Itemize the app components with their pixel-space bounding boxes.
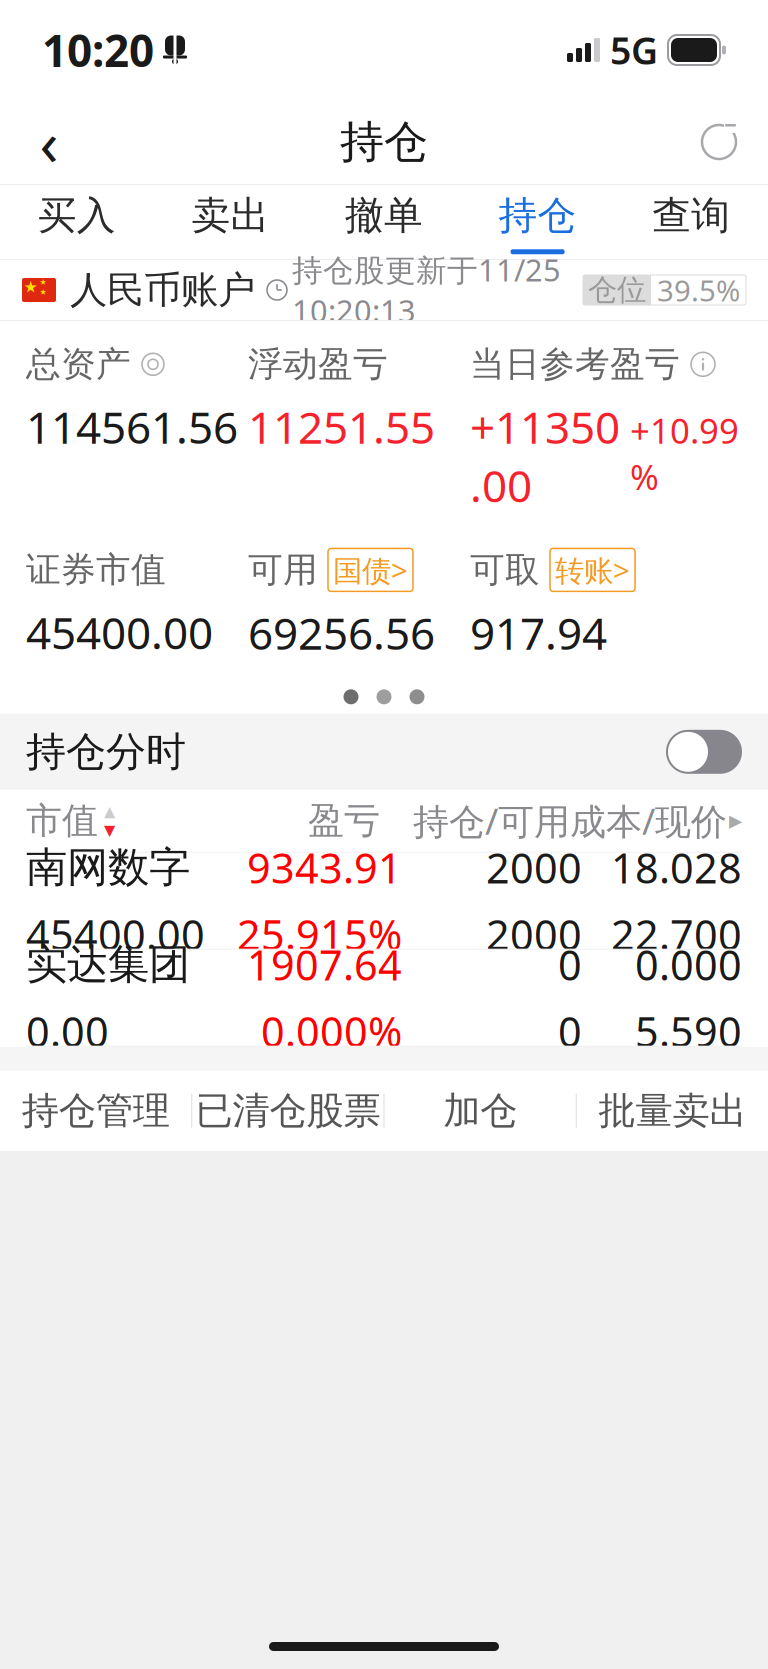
staticText: 证券市值 [26, 548, 166, 591]
button[interactable]: 返回 [14, 107, 84, 177]
staticText: ★ [23, 278, 37, 296]
button[interactable]: 持仓管理 [0, 1071, 191, 1151]
staticText: ‹ [39, 101, 58, 183]
button[interactable]: 市值 [26, 799, 115, 843]
button[interactable]: 刷新 [684, 107, 754, 177]
staticText: 查询 [652, 192, 730, 239]
button[interactable]: 实达集团 [0, 950, 768, 1046]
staticText: 5G [610, 25, 658, 75]
staticText: 0.000% [261, 1004, 402, 1059]
staticText: 已清仓股票 [195, 1088, 380, 1134]
button[interactable]: 持仓 [461, 185, 614, 259]
staticText: 0.00 [26, 1004, 109, 1059]
staticText: 39.5% [657, 270, 740, 309]
staticText: 国债> [333, 550, 408, 589]
staticText: 18.028 [611, 840, 742, 895]
staticText: 45400.00 [26, 603, 213, 661]
staticText: 实达集团 [26, 939, 190, 990]
staticText: 持仓 [499, 192, 577, 239]
staticText: 917.94 [470, 603, 607, 662]
staticText: 成本/现价 [570, 797, 727, 845]
staticText: 2000 [486, 907, 582, 962]
staticText: 0 [558, 1004, 582, 1059]
staticText: 10:20 [42, 21, 154, 79]
staticText: ★ [39, 287, 46, 297]
staticText: 转账> [555, 550, 630, 589]
staticText: 0.000 [635, 937, 742, 992]
staticText: ★ [39, 277, 46, 286]
staticText: 45400.00 [26, 907, 205, 962]
staticText: 持仓分时 [26, 727, 186, 776]
staticText: 0 [558, 937, 582, 992]
staticText: 人民币账户 [70, 267, 255, 313]
staticText: ▶ [729, 811, 742, 831]
staticText: 当日参考盈亏 [470, 343, 680, 386]
button[interactable]: 查询 [614, 185, 768, 259]
staticText: ▲ [104, 803, 115, 820]
staticText: +11350.00 [470, 398, 620, 514]
button[interactable]: 转账> [550, 548, 635, 591]
button[interactable]: 卖出 [154, 185, 307, 259]
staticText: 114561.56 [26, 398, 238, 456]
staticText: 持仓/可用 [413, 797, 570, 845]
button[interactable]: 撤单 [307, 185, 461, 259]
staticText: 仓位 [588, 272, 646, 308]
staticText: 11251.55 [248, 398, 435, 456]
staticText: 5.590 [635, 1004, 742, 1059]
staticText: 69256.56 [248, 603, 435, 662]
staticText: 持仓股更新于11/25 10:20:13 [292, 249, 561, 331]
staticText: ▼ [104, 822, 115, 838]
staticText: 市值 [26, 799, 98, 843]
staticText: 22.700 [611, 907, 742, 962]
staticText: 1907.64 [247, 937, 402, 992]
button[interactable]: 买入 [0, 185, 154, 259]
button[interactable]: 国债> [328, 548, 413, 591]
staticText: 撤单 [345, 192, 423, 239]
staticText: 9343.91 [247, 840, 402, 895]
staticText: 南网数字 [26, 842, 190, 893]
staticText: 买入 [38, 192, 116, 239]
staticText: 总资产 [26, 343, 131, 386]
staticText: 加仓 [443, 1088, 517, 1134]
button[interactable]: 加仓 [384, 1071, 576, 1151]
staticText: 批量卖出 [598, 1088, 746, 1134]
staticText: +10.99% [630, 407, 739, 499]
staticText: 可用 [248, 549, 318, 591]
staticText: 浮动盈亏 [248, 343, 388, 386]
button[interactable]: 南网数字 [0, 853, 768, 949]
button[interactable]: 持仓分时开关 [666, 730, 742, 774]
staticText: 持仓管理 [22, 1088, 170, 1134]
button[interactable]: 已清仓股票 [192, 1071, 383, 1151]
button[interactable]: 批量卖出 [577, 1071, 768, 1151]
staticText: 2000 [486, 840, 582, 895]
staticText: 25.915% [237, 907, 402, 962]
staticText: 可取 [470, 549, 540, 591]
staticText: 卖出 [191, 192, 269, 239]
staticText: 持仓 [340, 115, 428, 169]
staticText: 盈亏 [308, 799, 380, 843]
